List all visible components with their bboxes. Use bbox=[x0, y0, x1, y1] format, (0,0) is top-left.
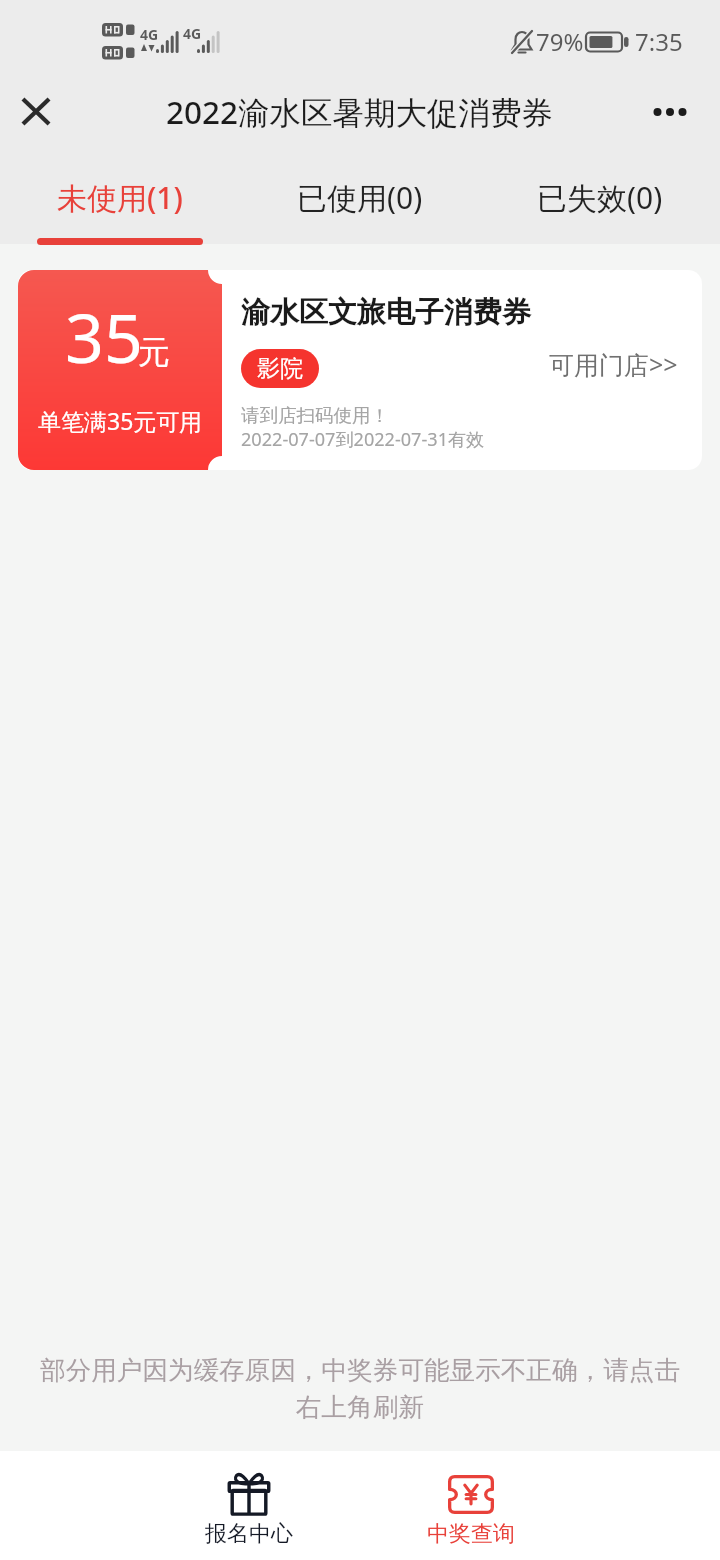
staticText: 已使用(0) bbox=[297, 177, 423, 218]
staticText: 35 bbox=[65, 290, 143, 383]
button[interactable]: 可用门店>> bbox=[549, 347, 678, 381]
staticText: 请到店扫码使用！ bbox=[241, 404, 389, 427]
staticText: 已失效(0) bbox=[537, 177, 663, 218]
staticText: 4G bbox=[140, 25, 159, 44]
button[interactable]: More options bbox=[636, 78, 720, 155]
staticText: 79% bbox=[536, 25, 584, 58]
button[interactable]: Close bbox=[0, 78, 72, 155]
staticText: 2022-07-07到2022-07-31有效 bbox=[241, 427, 485, 452]
staticText: 元 bbox=[138, 332, 170, 372]
button[interactable]: 未使用(1) bbox=[0, 155, 240, 244]
staticText: 报名中心 bbox=[205, 1520, 293, 1548]
staticText: 7:35 bbox=[635, 25, 683, 58]
staticText: 渝水区文旅电子消费券 bbox=[241, 294, 531, 331]
staticText: 可用门店>> bbox=[549, 347, 678, 381]
button[interactable]: 中奖查询 bbox=[360, 1451, 582, 1560]
button[interactable] bbox=[18, 270, 702, 470]
button[interactable]: 已失效(0) bbox=[480, 155, 720, 244]
button[interactable]: 影院 bbox=[241, 349, 319, 388]
staticText: 未使用(1) bbox=[57, 177, 183, 218]
staticText: 单笔满35元可用 bbox=[38, 405, 203, 436]
staticText: 影院 bbox=[257, 354, 303, 383]
button[interactable]: 报名中心 bbox=[138, 1451, 360, 1560]
staticText: 中奖查询 bbox=[427, 1520, 515, 1548]
staticText: 部分用户因为缓存原因，中奖券可能显示不正确，请点击右上角刷新 bbox=[38, 1354, 682, 1424]
button[interactable]: 已使用(0) bbox=[240, 155, 480, 244]
staticText: 2022渝水区暑期大促消费券 bbox=[166, 90, 554, 133]
staticText: 4G bbox=[183, 24, 202, 43]
